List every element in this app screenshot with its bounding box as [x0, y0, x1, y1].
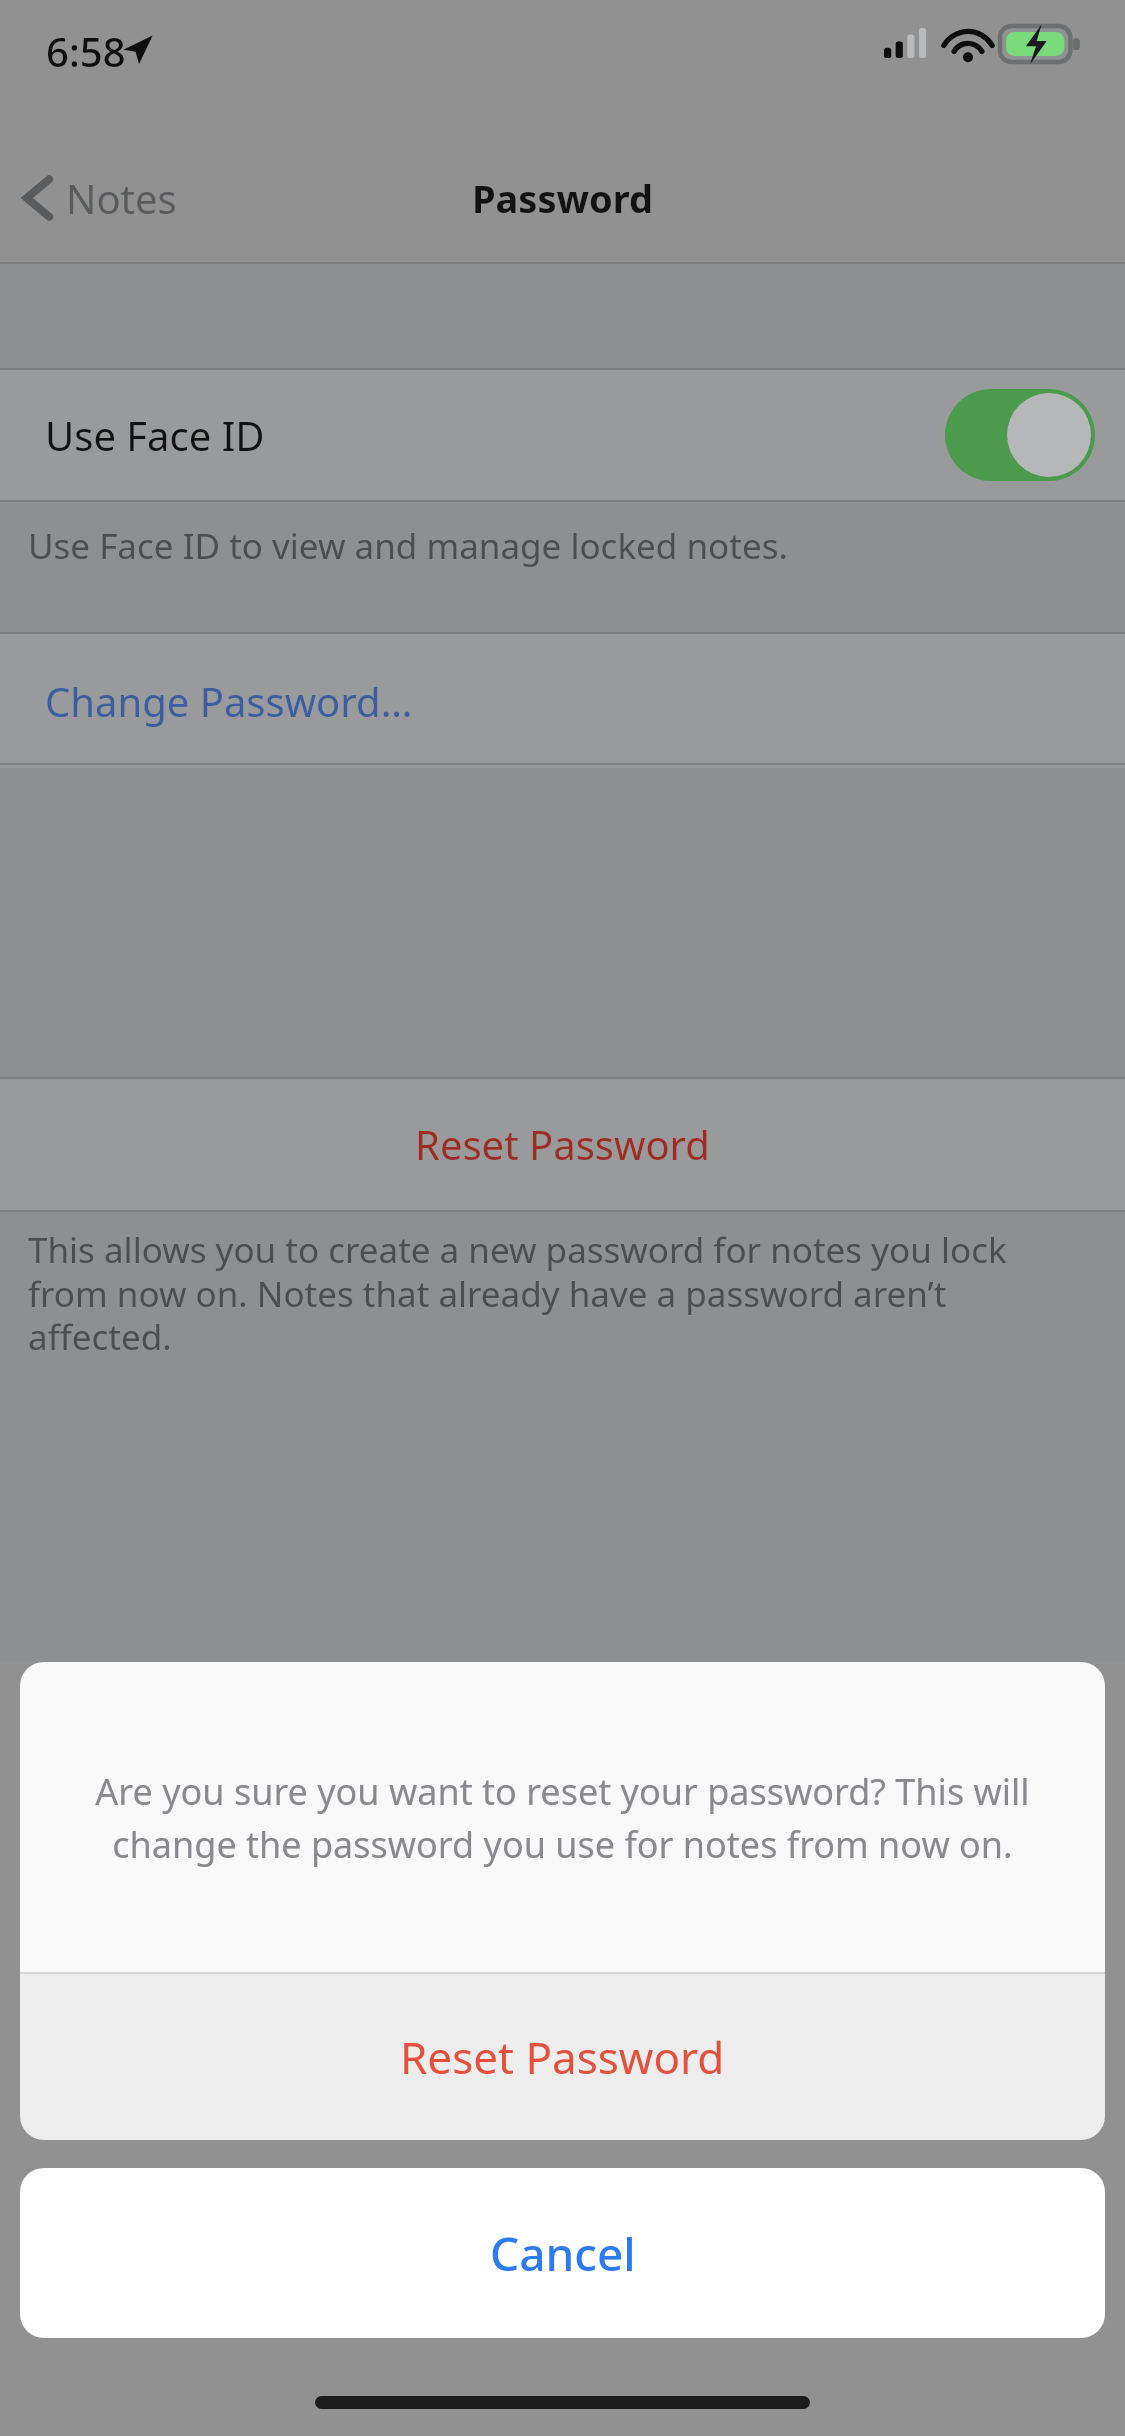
staticText: Are you sure you want to reset your pass…	[68, 1767, 1057, 1868]
staticText: Reset Password	[415, 1117, 710, 1171]
staticText: Cancel	[490, 2222, 636, 2285]
button[interactable]: Reset Password	[0, 1078, 1125, 1210]
button[interactable]: Notes	[18, 171, 177, 225]
staticText: Password	[472, 172, 654, 224]
staticText: Change Password…	[45, 674, 413, 728]
button[interactable]: Change Password…	[0, 634, 1125, 768]
staticText: Reset Password	[400, 2027, 725, 2087]
button[interactable]: Cancel	[20, 2168, 1105, 2338]
button[interactable]: Use Face ID toggle, on	[945, 389, 1095, 481]
staticText: Use Face ID	[45, 408, 265, 462]
staticText: This allows you to create a new password…	[28, 1226, 1090, 1360]
button[interactable]: Use Face ID	[0, 370, 1125, 500]
staticText: Notes	[66, 171, 177, 225]
staticText: 6:58	[46, 24, 126, 78]
button[interactable]: Reset Password	[20, 1974, 1105, 2140]
staticText: Use Face ID to view and manage locked no…	[28, 522, 788, 570]
